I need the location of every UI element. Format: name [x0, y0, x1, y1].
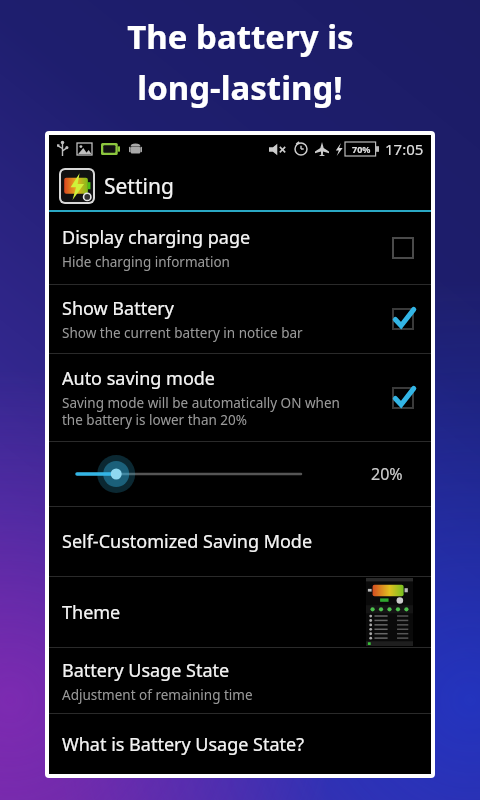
staticText: 17:05 [385, 139, 424, 159]
staticText: Adjustment of remaining time [62, 686, 253, 704]
button[interactable]: Setting [49, 162, 431, 210]
staticText: What is Battery Usage State? [62, 732, 305, 757]
staticText: Display charging page [62, 225, 251, 250]
button[interactable]: Display charging page [49, 212, 431, 284]
staticText: Battery Usage State [62, 658, 230, 683]
button[interactable]: Theme [49, 577, 431, 647]
staticText: The battery is [127, 14, 354, 59]
staticText: Hide charging information [62, 253, 230, 271]
staticText: Theme [62, 600, 121, 625]
staticText: Saving mode will be automatically ON whe… [62, 394, 340, 429]
staticText: long-lasting! [137, 65, 343, 110]
staticText: Auto saving mode [62, 366, 216, 391]
other: Checked [391, 307, 415, 331]
button[interactable]: Self-Customized Saving Mode [49, 507, 431, 576]
button[interactable]: Battery threshold slider [49, 442, 431, 506]
button[interactable]: What is Battery Usage State? [49, 714, 431, 774]
staticText: Show the current battery in notice bar [62, 324, 303, 342]
staticText: Show Battery [62, 296, 174, 321]
staticText: Self-Customized Saving Mode [62, 529, 313, 554]
staticText: 20% [371, 463, 403, 485]
button[interactable]: Battery Usage State [49, 648, 431, 713]
button[interactable]: Show Battery [49, 285, 431, 353]
staticText: 70% [352, 143, 371, 155]
button[interactable]: Auto saving mode [49, 354, 431, 441]
other: Unchecked [391, 236, 415, 260]
other: Checked [391, 386, 415, 410]
staticText: Setting [104, 172, 174, 201]
